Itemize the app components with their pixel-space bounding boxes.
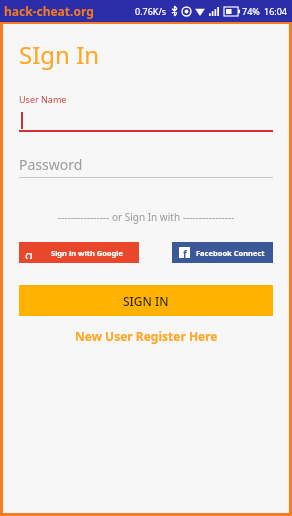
staticText: ---------------- or Sign In with -------… [3,210,289,224]
button[interactable]: f [172,242,273,263]
button[interactable]: User Name [19,93,273,132]
staticText: New User Register Here [75,328,218,344]
staticText: SIgn In [19,38,100,71]
staticText: 0.76K/s [135,5,167,17]
button[interactable]: g+ [19,242,139,263]
staticText: hack-cheat.org [4,3,94,19]
staticText: Password [19,155,83,174]
staticText: g+ [25,246,38,259]
button[interactable]: Password [19,154,273,178]
staticText: 16:04 [264,5,288,17]
staticText: 74% [242,5,260,17]
staticText: Facebook Connect [196,248,265,258]
staticText: Sign in with Google [51,248,124,258]
staticText: SIGN IN [123,293,169,309]
staticText: User Name [19,93,67,105]
staticText: f [183,247,187,258]
button[interactable]: SIGN IN [19,285,273,316]
button[interactable]: New User Register Here [3,328,289,344]
